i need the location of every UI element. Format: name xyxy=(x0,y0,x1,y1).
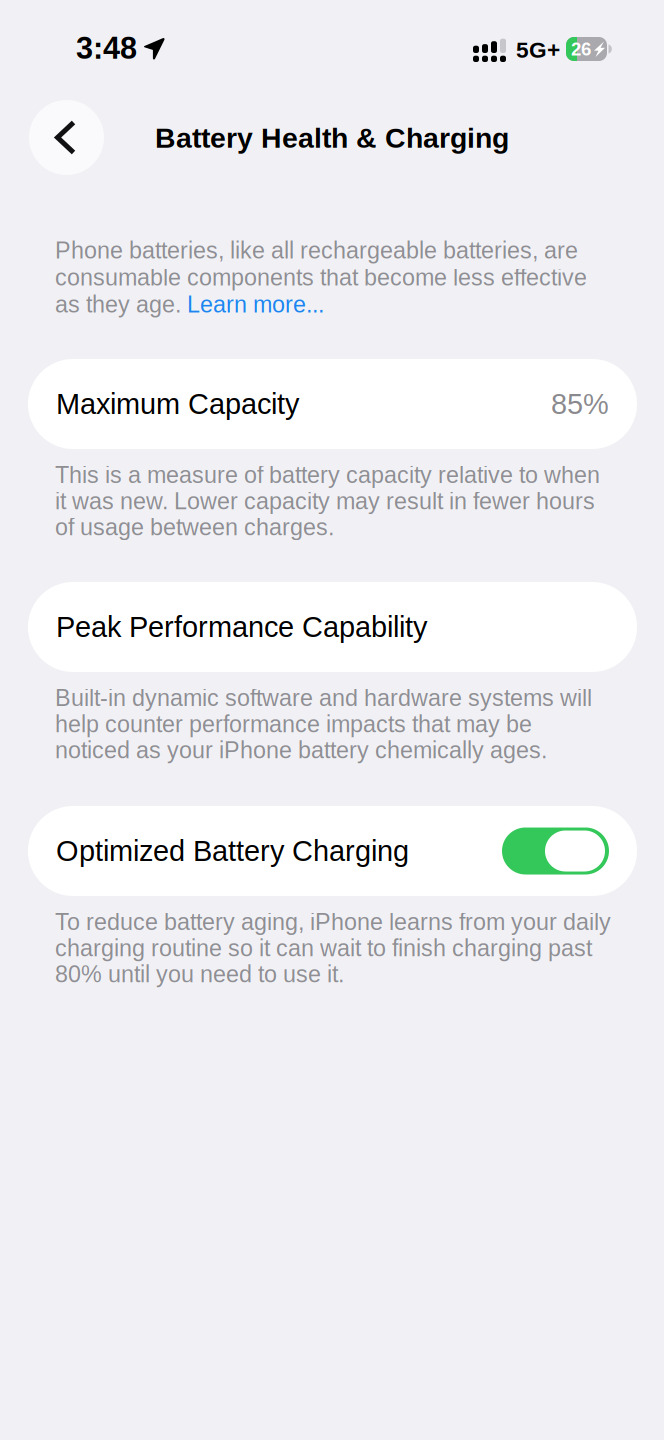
button[interactable]: Peak Performance Capability xyxy=(28,582,637,672)
button[interactable]: Maximum Capacity xyxy=(28,359,637,449)
staticText: To reduce battery aging, iPhone learns f… xyxy=(55,909,611,987)
staticText: Built-in dynamic software and hardware s… xyxy=(55,685,592,763)
staticText: This is a measure of battery capacity re… xyxy=(55,462,600,540)
staticText: 5G+ xyxy=(516,37,560,63)
staticText: consumable components that become less e… xyxy=(55,264,587,291)
staticText: Peak Performance Capability xyxy=(56,611,427,643)
staticText: 26 xyxy=(571,39,591,59)
staticText: Phone batteries, like all rechargeable b… xyxy=(55,237,578,264)
staticText: Optimized Battery Charging xyxy=(56,835,409,867)
button[interactable]: Learn more... xyxy=(187,291,324,318)
staticText: as they age. xyxy=(55,291,187,318)
staticText: 3:48 xyxy=(76,31,137,65)
staticText: Learn more... xyxy=(187,291,324,318)
staticText: 85% xyxy=(551,388,609,420)
staticText: Maximum Capacity xyxy=(56,388,299,420)
button[interactable]: Optimized Battery Charging xyxy=(502,827,609,874)
staticText: Battery Health & Charging xyxy=(155,122,509,154)
button[interactable]: Back xyxy=(29,100,104,175)
